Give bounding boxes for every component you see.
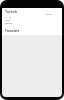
staticText: More bbox=[46, 12, 52, 15]
staticText: tr · TR bbox=[5, 16, 11, 19]
staticText: Latin bbox=[5, 19, 11, 22]
staticText: Turkish bbox=[5, 9, 18, 14]
staticText: Türkiye bbox=[5, 22, 13, 25]
staticText: Translate bbox=[5, 29, 20, 33]
button[interactable]: Translate bbox=[5, 29, 20, 33]
button[interactable]: More bbox=[46, 12, 52, 15]
